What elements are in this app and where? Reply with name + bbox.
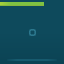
button[interactable]: Header (0, 2, 64, 20)
button[interactable]: Open (29, 29, 36, 36)
button[interactable]: Footer (7, 59, 57, 61)
